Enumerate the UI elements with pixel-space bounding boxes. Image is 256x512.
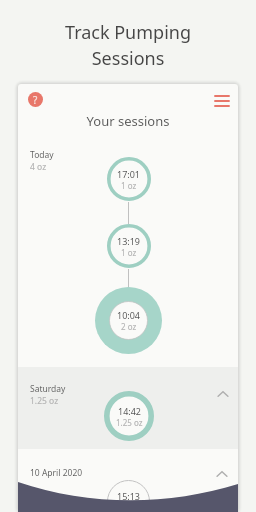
staticText: 14:42: [118, 405, 142, 417]
button[interactable]: Help: [28, 92, 43, 107]
staticText: 10:04: [117, 309, 141, 321]
staticText: 10 April 2020: [30, 467, 83, 479]
button[interactable]: 10:04: [95, 287, 162, 354]
button[interactable]: 15:13: [107, 480, 150, 512]
button[interactable]: 13:19: [107, 224, 151, 268]
staticText: 1 oz: [121, 247, 137, 258]
button[interactable]: 17:01: [107, 157, 151, 201]
button[interactable]: Collapse 10 April 2020: [212, 464, 232, 484]
staticText: 1.25 oz: [30, 395, 59, 407]
staticText: 1.25 oz: [116, 417, 143, 428]
staticText: 13:19: [117, 235, 141, 247]
staticText: 1 oz: [121, 180, 137, 191]
staticText: Track Pumping Sessions: [0, 20, 256, 70]
staticText: ?: [33, 93, 38, 107]
staticText: 2 oz: [121, 321, 137, 332]
button[interactable]: Menu: [211, 90, 233, 112]
staticText: 17:01: [117, 168, 141, 180]
staticText: 15:13: [117, 490, 141, 502]
button[interactable]: Collapse Saturday: [213, 384, 233, 404]
staticText: Today: [30, 149, 54, 161]
staticText: 4 oz: [30, 161, 47, 173]
staticText: Your sessions: [18, 112, 238, 130]
button[interactable]: 14:42: [104, 391, 154, 441]
staticText: Saturday: [30, 383, 66, 395]
